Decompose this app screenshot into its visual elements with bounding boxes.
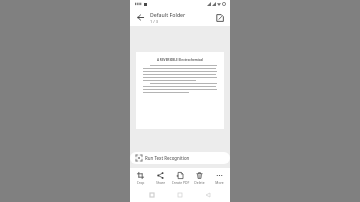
staticText: Create PDF xyxy=(171,180,190,185)
button[interactable]: Back xyxy=(134,11,147,24)
button[interactable]: Home xyxy=(174,189,186,201)
button[interactable]: Crop xyxy=(131,168,150,188)
button[interactable]: Edit xyxy=(213,11,226,24)
staticText: More xyxy=(210,180,229,185)
button[interactable]: Run Text Recognition xyxy=(130,152,230,164)
button[interactable]: Recents xyxy=(146,189,158,201)
button[interactable]: More xyxy=(210,168,229,188)
staticText: A REVERSIBLE Electrochemical xyxy=(143,58,217,62)
button[interactable]: Back xyxy=(202,189,214,201)
staticText: Share xyxy=(151,180,170,185)
button[interactable]: Create PDF xyxy=(171,168,190,188)
button[interactable]: Delete xyxy=(190,168,209,188)
button[interactable]: A REVERSIBLE Electrochemical xyxy=(136,52,224,129)
staticText: Crop xyxy=(131,180,150,185)
button[interactable]: Share xyxy=(151,168,170,188)
staticText: Run Text Recognition xyxy=(145,155,224,161)
staticText: Default Folder xyxy=(150,11,213,18)
staticText: 1 / 3 xyxy=(150,19,213,24)
staticText: Delete xyxy=(190,180,209,185)
button[interactable]: Default Folder xyxy=(150,11,213,24)
